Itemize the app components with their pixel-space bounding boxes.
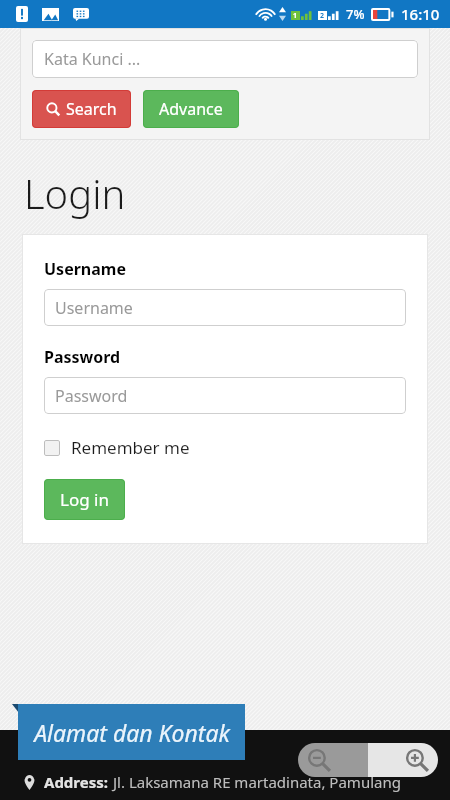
staticText: Username <box>44 258 126 280</box>
staticText: Log in <box>60 488 109 511</box>
staticText: 16:10 <box>401 4 440 24</box>
staticText: Remember me <box>71 436 190 459</box>
button[interactable]: Kata Kunci ... <box>32 40 418 78</box>
staticText: Password <box>44 346 121 368</box>
button[interactable]: Zoom out <box>298 743 368 777</box>
button[interactable]: Search <box>32 90 131 128</box>
button[interactable]: Advance <box>143 90 239 128</box>
button[interactable]: Remember me <box>44 436 190 459</box>
button[interactable]: Username <box>44 289 406 326</box>
button[interactable]: Password <box>44 377 406 414</box>
button[interactable]: Log in <box>44 479 125 520</box>
staticText: Username <box>55 297 133 319</box>
staticText: Login <box>24 166 126 220</box>
staticText: Kata Kunci ... <box>44 48 141 70</box>
staticText: 2 <box>320 11 325 20</box>
staticText: Jl. Laksamana RE martadinata, Pamulang <box>113 772 401 792</box>
button[interactable]: Zoom in <box>368 743 438 777</box>
staticText: Search <box>66 98 117 120</box>
staticText: 7% <box>346 5 365 23</box>
staticText: 1 <box>293 11 298 20</box>
staticText: Advance <box>159 98 223 120</box>
staticText: Password <box>55 385 128 407</box>
staticText: Alamat dan Kontak <box>34 717 230 748</box>
button[interactable]: Alamat dan Kontak <box>18 704 245 760</box>
staticText: Address: <box>44 772 108 792</box>
